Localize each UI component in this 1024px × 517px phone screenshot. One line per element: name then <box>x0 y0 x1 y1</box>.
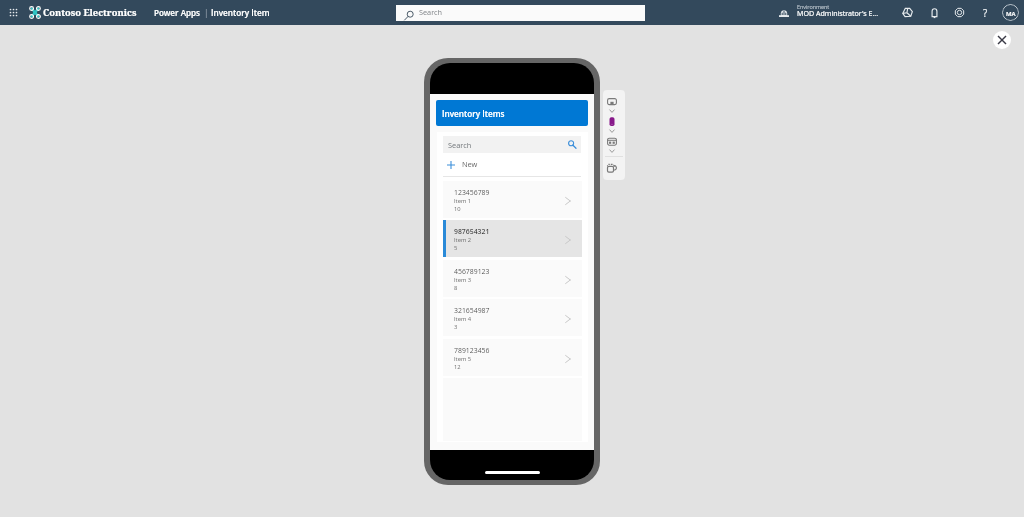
button[interactable]: 987654321 <box>443 220 582 257</box>
staticText: Search <box>448 140 472 150</box>
staticText: Item 3 <box>454 276 472 284</box>
button[interactable]: Inventory Items <box>436 100 588 126</box>
button[interactable]: App launcher <box>6 4 20 21</box>
button[interactable]: Environment <box>776 2 882 23</box>
button[interactable]: Search <box>443 136 581 153</box>
button[interactable]: Notifications <box>926 4 943 21</box>
staticText: Item 5 <box>454 355 472 363</box>
button[interactable]: Help <box>977 4 993 21</box>
button[interactable]: 456789123 <box>443 260 582 297</box>
staticText: Power Apps <box>154 7 201 18</box>
staticText: 8 <box>454 284 458 292</box>
button[interactable]: 123456789 <box>443 181 582 218</box>
staticText: MOD Administrator's E... <box>797 8 879 18</box>
button[interactable]: Account <box>1002 4 1019 21</box>
button[interactable]: 789123456 <box>443 339 582 376</box>
button[interactable]: Publish <box>606 162 618 174</box>
staticText: | <box>204 7 209 18</box>
staticText: 456789123 <box>454 267 490 276</box>
staticText: Inventory Item <box>211 7 270 18</box>
staticText: 321654987 <box>454 306 490 315</box>
button[interactable]: New <box>437 156 588 173</box>
staticText: New <box>462 159 478 169</box>
staticText: 3 <box>454 323 458 331</box>
button[interactable]: Settings <box>951 4 968 21</box>
staticText: MA <box>1006 9 1016 17</box>
button[interactable]: Device <box>606 116 618 128</box>
staticText: Item 2 <box>454 236 472 244</box>
button[interactable]: Orientation <box>606 136 618 148</box>
button[interactable]: Search <box>396 5 645 21</box>
staticText: 987654321 <box>454 227 490 236</box>
staticText: 789123456 <box>454 346 490 355</box>
staticText: Contoso Electronics <box>43 6 137 19</box>
staticText: Inventory Items <box>442 108 505 119</box>
staticText: Search <box>419 7 442 17</box>
staticText: 123456789 <box>454 188 490 197</box>
button[interactable]: Screen size <box>606 96 618 108</box>
staticText: 10 <box>454 205 461 213</box>
staticText: ? <box>983 6 988 20</box>
staticText: Environment <box>797 3 830 10</box>
staticText: 12 <box>454 363 461 371</box>
button[interactable]: Close <box>993 31 1011 49</box>
button[interactable]: Power Platform <box>899 4 916 21</box>
button[interactable]: 321654987 <box>443 299 582 336</box>
staticText: 5 <box>454 244 458 252</box>
staticText: Item 4 <box>454 315 472 323</box>
staticText: Item 1 <box>454 197 472 205</box>
